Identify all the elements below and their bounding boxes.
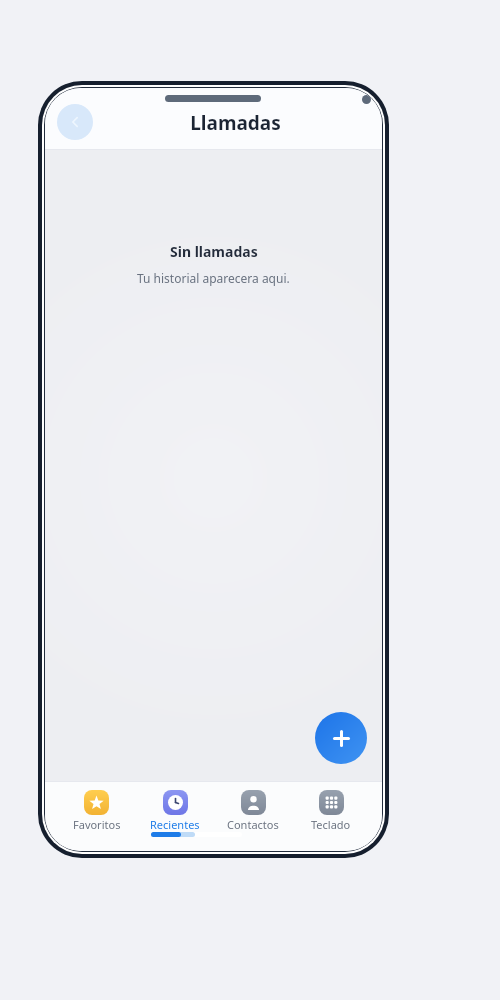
button[interactable]: Contactos xyxy=(214,781,292,851)
staticText: Tu historial aparecera aqui. xyxy=(137,270,290,286)
button[interactable]: Favoritos xyxy=(57,781,136,851)
staticText: Contactos xyxy=(227,817,279,832)
button[interactable]: Teclado xyxy=(292,781,370,851)
staticText: Sin llamadas xyxy=(170,242,258,261)
staticText: Teclado xyxy=(311,817,351,832)
staticText: Llamadas xyxy=(89,110,382,136)
button[interactable] xyxy=(57,104,93,140)
button[interactable]: Recientes xyxy=(136,781,214,851)
staticText: Recientes xyxy=(150,817,200,832)
button[interactable] xyxy=(315,712,367,764)
staticText: Favoritos xyxy=(73,817,121,832)
